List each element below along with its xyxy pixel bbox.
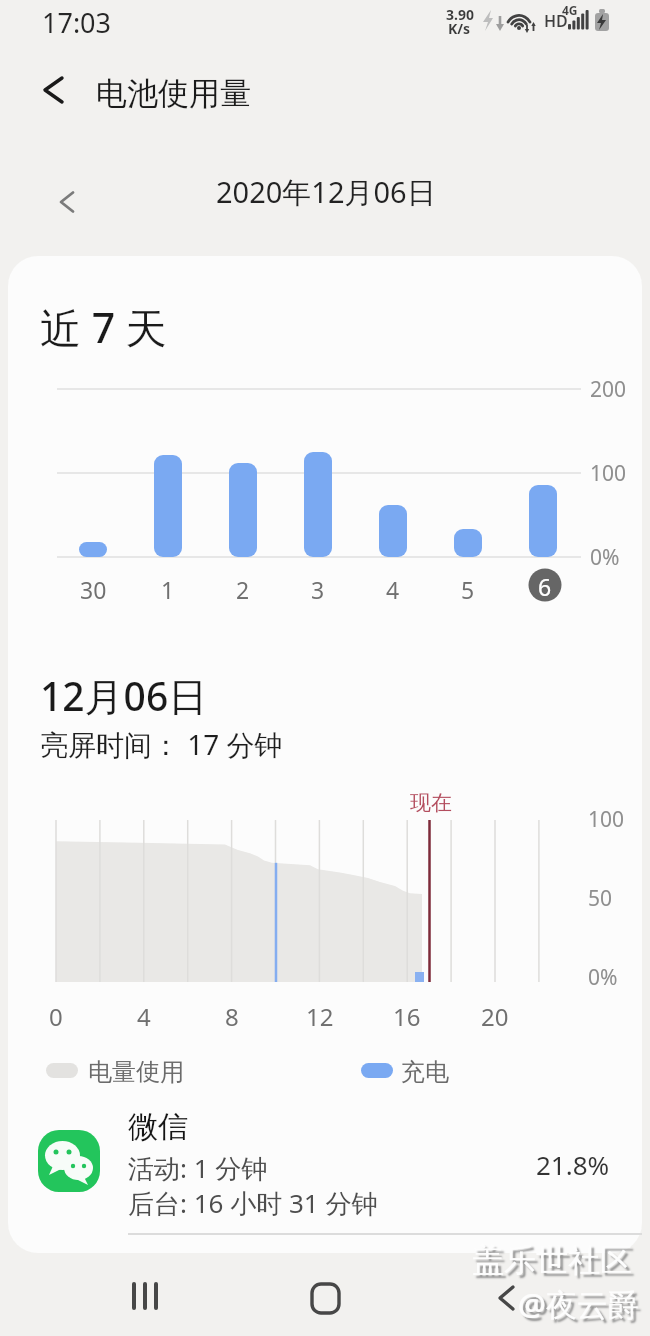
button[interactable] xyxy=(40,180,84,224)
staticText: 0% xyxy=(588,963,618,992)
staticText: 30 xyxy=(80,574,107,605)
staticText: 16 xyxy=(393,1000,421,1033)
staticText: 后台: 16 小时 31 分钟 xyxy=(128,1185,378,1221)
staticText: 17:03 xyxy=(42,4,112,41)
staticText: 12月06日 xyxy=(40,669,208,722)
staticText: 12 xyxy=(306,1000,334,1033)
button[interactable] xyxy=(523,563,567,607)
staticText: K/s xyxy=(448,19,471,38)
staticText: 亮屏时间： 17 分钟 xyxy=(40,725,283,763)
staticText: 微信 xyxy=(128,1108,188,1146)
staticText: HD xyxy=(544,10,568,32)
staticText: 21.8% xyxy=(536,1147,610,1182)
staticText: 100 xyxy=(590,459,627,488)
staticText: 0% xyxy=(590,543,620,572)
staticText: 200 xyxy=(590,375,627,404)
staticText: 4 xyxy=(386,574,400,605)
staticText: 盖乐世社区 xyxy=(472,1240,632,1280)
staticText: 4G xyxy=(562,2,578,18)
button[interactable] xyxy=(467,1262,547,1332)
staticText: 0 xyxy=(49,1000,63,1033)
staticText: 电池使用量 xyxy=(96,74,251,113)
button[interactable] xyxy=(105,1262,185,1332)
staticText: 电量使用 xyxy=(88,1057,184,1087)
staticText: 2020年12月06日 xyxy=(216,172,436,212)
staticText: 现在 xyxy=(410,790,452,816)
staticText: 充电 xyxy=(401,1057,449,1087)
staticText: 8 xyxy=(225,1000,239,1033)
staticText: 1 xyxy=(161,574,175,605)
button[interactable] xyxy=(20,1120,630,1220)
staticText: 2 xyxy=(236,574,250,605)
button[interactable] xyxy=(30,70,74,114)
staticText: 近 7 天 xyxy=(40,299,167,355)
staticText: 100 xyxy=(588,805,625,834)
staticText: 6 xyxy=(538,571,552,602)
staticText: 3.90 xyxy=(446,5,474,24)
staticText: 50 xyxy=(588,884,613,913)
staticText: @夜云爵 xyxy=(518,1283,639,1325)
staticText: 4 xyxy=(137,1000,151,1033)
staticText: 20 xyxy=(481,1000,509,1033)
button[interactable] xyxy=(285,1262,365,1332)
staticText: 3 xyxy=(311,574,325,605)
staticText: 活动: 1 分钟 xyxy=(128,1150,268,1186)
staticText: 5 xyxy=(461,574,475,605)
